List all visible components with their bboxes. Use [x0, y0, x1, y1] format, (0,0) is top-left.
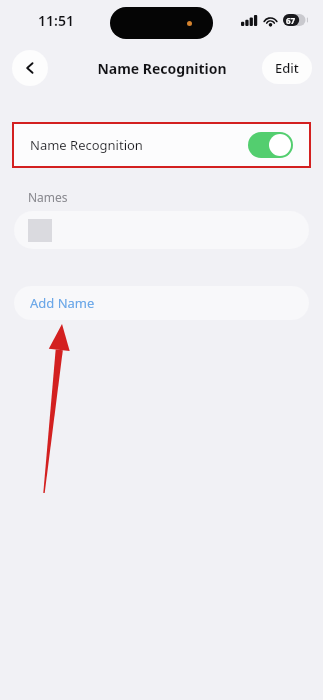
button[interactable]: Name Recognition toggle, on [248, 132, 293, 158]
staticText: Name Recognition [97, 59, 227, 78]
button[interactable]: Add Name [14, 286, 309, 320]
staticText: Names [28, 189, 68, 205]
staticText: Add Name [30, 294, 95, 312]
button[interactable] [14, 211, 309, 249]
staticText: Name Recognition [30, 136, 143, 154]
staticText: Edit [275, 59, 299, 77]
button[interactable]: Edit [262, 52, 312, 84]
button[interactable]: Name Recognition [14, 124, 309, 166]
button[interactable]: Back [12, 50, 48, 86]
staticText: 67 [286, 15, 296, 26]
staticText: 11:51 [38, 11, 74, 30]
